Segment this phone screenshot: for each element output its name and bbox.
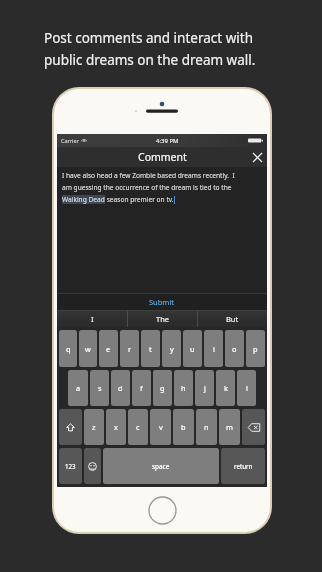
button[interactable]: h — [174, 370, 193, 406]
button[interactable]: p — [246, 330, 265, 367]
button[interactable]: l — [237, 370, 256, 406]
button[interactable]: r — [120, 330, 139, 367]
staticText: I have also head a few Zombie based drea… — [62, 171, 235, 180]
button[interactable]: v — [150, 409, 171, 445]
button[interactable]: y — [162, 330, 181, 367]
staticText: o — [232, 344, 237, 354]
staticText: l — [246, 383, 248, 393]
button[interactable]: I — [57, 311, 127, 327]
button[interactable]: i — [204, 330, 223, 367]
button[interactable]: f — [132, 370, 151, 406]
button[interactable]: But — [198, 311, 267, 327]
button[interactable]: u — [183, 330, 202, 367]
button[interactable]: e — [99, 330, 118, 367]
staticText: t — [149, 344, 152, 354]
staticText: w — [85, 344, 91, 354]
staticText: Post comments and interact with — [44, 29, 253, 47]
staticText: g — [160, 383, 165, 393]
button[interactable]: c — [128, 409, 148, 445]
staticText: public dreams on the dream wall. — [44, 51, 256, 69]
button[interactable]: The — [128, 311, 197, 327]
staticText: f — [140, 383, 143, 393]
button[interactable]: I have also head a few Zombie based drea… — [57, 167, 267, 293]
staticText: b — [181, 422, 186, 432]
button[interactable]: q — [59, 330, 77, 367]
button[interactable]: g — [153, 370, 172, 406]
staticText: a — [76, 383, 81, 393]
staticText: I — [91, 314, 94, 324]
staticText: y — [170, 344, 174, 354]
staticText: h — [181, 383, 186, 393]
staticText: s — [98, 383, 102, 393]
button[interactable]: 123 — [59, 448, 82, 484]
staticText: Walking Dead — [62, 195, 105, 204]
staticText: k — [224, 383, 228, 393]
staticText: The — [156, 314, 170, 324]
button[interactable]: d — [111, 370, 130, 406]
staticText: i — [213, 344, 215, 354]
staticText: m — [226, 422, 233, 432]
staticText: Submit — [149, 297, 175, 307]
button[interactable]: z — [84, 409, 104, 445]
button[interactable]: t — [141, 330, 160, 367]
button[interactable]: Emoji — [84, 448, 101, 484]
staticText: r — [128, 344, 132, 354]
button[interactable]: k — [216, 370, 235, 406]
staticText: d — [118, 383, 123, 393]
staticText: u — [190, 344, 195, 354]
button[interactable]: space — [103, 448, 219, 484]
staticText: q — [66, 344, 71, 354]
staticText: But — [226, 314, 239, 324]
staticText: 123 — [65, 462, 76, 470]
staticText: p — [253, 344, 258, 354]
staticText: return — [234, 462, 253, 470]
staticText: Carrier — [61, 137, 79, 144]
button[interactable]: s — [90, 370, 109, 406]
button[interactable]: return — [221, 448, 265, 484]
button[interactable]: b — [173, 409, 194, 445]
button[interactable]: n — [196, 409, 217, 445]
staticText: j — [204, 383, 206, 393]
staticText: 4:39 PM — [156, 137, 179, 145]
button[interactable]: j — [195, 370, 214, 406]
button[interactable]: m — [219, 409, 240, 445]
staticText: e — [106, 344, 111, 354]
button[interactable]: Delete — [242, 409, 265, 445]
staticText: z — [92, 422, 96, 432]
button[interactable]: x — [106, 409, 126, 445]
staticText: c — [136, 422, 140, 432]
staticText: space — [152, 462, 170, 471]
button[interactable]: o — [225, 330, 244, 367]
staticText: am guessing the occurrence of the dream … — [62, 183, 232, 192]
button[interactable]: Close — [247, 147, 267, 167]
button[interactable]: w — [79, 330, 97, 367]
staticText: Comment — [138, 150, 187, 164]
staticText: x — [114, 422, 118, 432]
button[interactable]: Submit — [57, 294, 267, 310]
staticText: v — [159, 422, 163, 432]
button[interactable]: Shift — [59, 409, 82, 445]
button[interactable]: a — [68, 370, 88, 406]
staticText: season premier on tv. — [105, 195, 174, 204]
staticText: n — [204, 422, 209, 432]
